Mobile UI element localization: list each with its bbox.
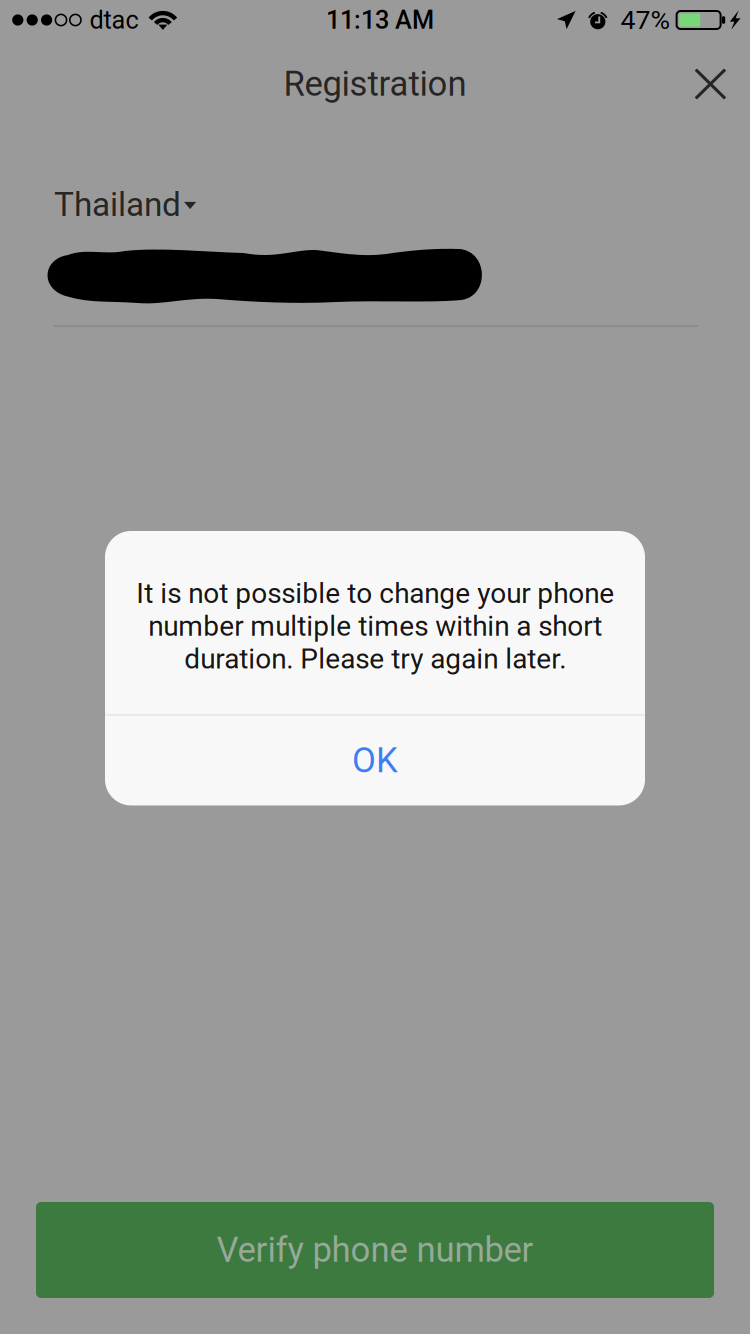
button[interactable]: Close: [678, 50, 742, 118]
staticText: It is not possible to change your phone …: [136, 577, 614, 675]
button[interactable]: OK: [105, 715, 645, 805]
staticText: Verify phone number: [216, 1230, 533, 1270]
staticText: Registration: [283, 64, 466, 104]
staticText: OK: [352, 740, 398, 781]
staticText: 47%: [621, 4, 671, 36]
staticText: Thailand: [54, 185, 181, 224]
staticText: dtac: [90, 5, 139, 35]
button[interactable]: Verify phone number: [36, 1202, 714, 1298]
staticText: 11:13 AM: [326, 5, 434, 35]
button[interactable]: Phone number: [0, 232, 750, 327]
button[interactable]: Thailand: [0, 177, 210, 232]
